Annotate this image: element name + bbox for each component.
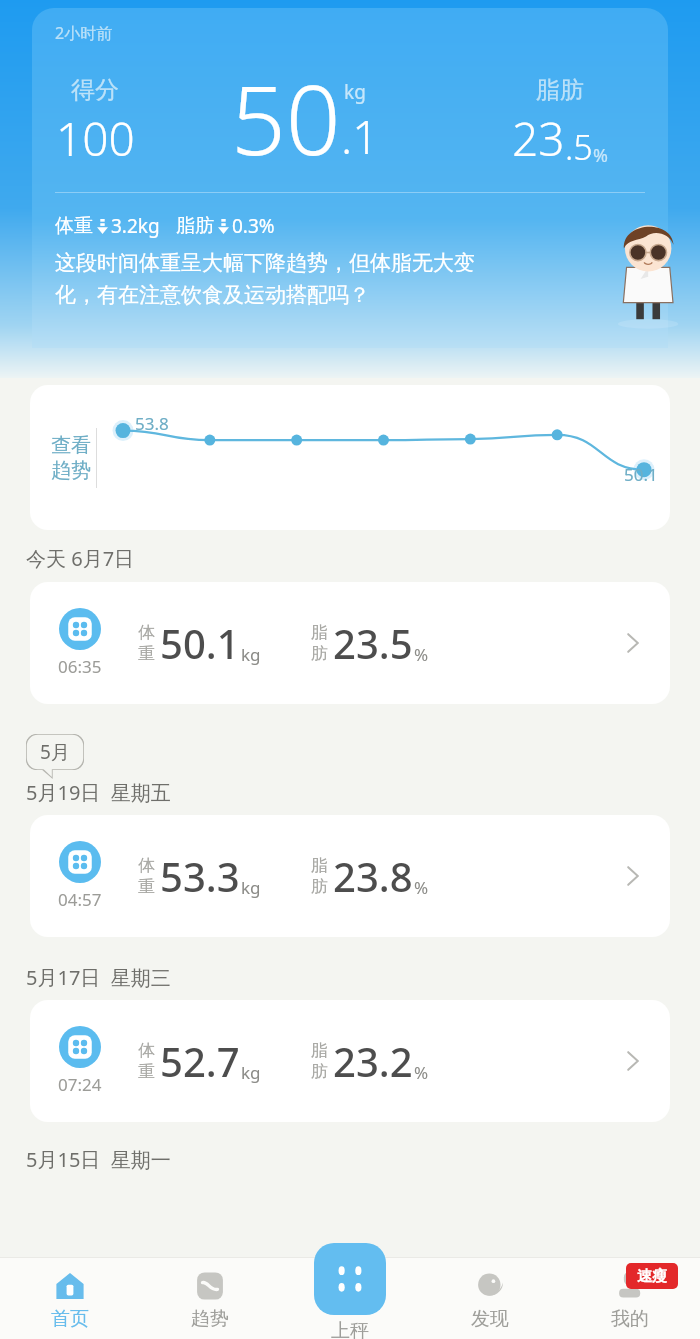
staticText: .5 bbox=[565, 124, 593, 170]
staticText: 5月 bbox=[40, 739, 70, 765]
staticText: 体重 bbox=[55, 214, 93, 238]
staticText: 5月15日 星期一 bbox=[26, 1146, 171, 1173]
staticText: % bbox=[414, 876, 429, 899]
button[interactable]: 发现 bbox=[420, 1257, 560, 1339]
other: 查看详情 bbox=[618, 628, 648, 658]
staticText: 速瘦 bbox=[637, 1267, 667, 1286]
button[interactable]: 首页 bbox=[0, 1257, 140, 1339]
staticText: 上秤 bbox=[331, 1319, 369, 1339]
staticText: kg bbox=[344, 79, 366, 105]
staticText: 23 bbox=[512, 107, 565, 170]
button[interactable]: 06:35 bbox=[30, 582, 670, 704]
staticText: 100 bbox=[56, 107, 135, 170]
button[interactable]: 5月 bbox=[26, 734, 84, 770]
button[interactable]: 趋势 bbox=[140, 1257, 280, 1339]
other: 查看详情 bbox=[618, 1046, 648, 1076]
staticText: 53.3 bbox=[160, 849, 240, 903]
staticText: % bbox=[414, 1061, 429, 1084]
button[interactable]: 查看 bbox=[30, 385, 670, 530]
button[interactable]: 我的 bbox=[560, 1257, 700, 1339]
staticText: 脂肪 bbox=[536, 75, 584, 105]
staticText: kg bbox=[241, 643, 261, 666]
button[interactable]: 上秤 bbox=[314, 1243, 386, 1315]
staticText: .1 bbox=[341, 105, 379, 168]
staticText: 肪 bbox=[311, 643, 328, 664]
staticText: 脂肪 bbox=[176, 214, 214, 238]
staticText: 我的 bbox=[611, 1307, 649, 1331]
staticText: 重 bbox=[138, 1061, 155, 1082]
staticText: 23.2 bbox=[333, 1034, 413, 1088]
staticText: 趋势 bbox=[191, 1307, 229, 1331]
staticText: 3.2kg bbox=[111, 213, 160, 239]
staticText: % bbox=[593, 143, 608, 168]
staticText: 查看 bbox=[51, 433, 91, 458]
staticText: 2小时前 bbox=[55, 22, 113, 44]
other: 查看详情 bbox=[618, 861, 648, 891]
button[interactable]: 07:24 bbox=[30, 1000, 670, 1122]
staticText: 50 bbox=[231, 52, 341, 170]
staticText: 5月17日 星期三 bbox=[26, 964, 171, 991]
staticText: 脂 bbox=[311, 855, 328, 876]
button[interactable]: 04:57 bbox=[30, 815, 670, 937]
staticText: 50.1 bbox=[160, 616, 240, 670]
staticText: 06:35 bbox=[58, 655, 102, 678]
staticText: 体 bbox=[138, 855, 155, 876]
staticText: 肪 bbox=[311, 1061, 328, 1082]
staticText: kg bbox=[241, 1061, 261, 1084]
staticText: 0.3% bbox=[232, 213, 275, 239]
staticText: 23.8 bbox=[333, 849, 413, 903]
staticText: 体 bbox=[138, 1040, 155, 1061]
staticText: 重 bbox=[138, 876, 155, 897]
staticText: kg bbox=[241, 876, 261, 899]
staticText: 重 bbox=[138, 643, 155, 664]
staticText: % bbox=[414, 643, 429, 666]
staticText: 体 bbox=[138, 622, 155, 643]
staticText: 今天 6月7日 bbox=[26, 545, 135, 572]
staticText: 50.1 bbox=[624, 463, 658, 486]
staticText: 趋势 bbox=[51, 458, 91, 483]
staticText: 发现 bbox=[471, 1307, 509, 1331]
staticText: 这段时间体重呈大幅下降趋势，但体脂无大变 化，有在注意饮食及运动搭配吗？ bbox=[55, 250, 475, 308]
staticText: 首页 bbox=[51, 1307, 89, 1331]
staticText: 53.8 bbox=[135, 412, 169, 435]
staticText: 04:57 bbox=[58, 888, 102, 911]
staticText: 得分 bbox=[71, 75, 119, 105]
staticText: 5月19日 星期五 bbox=[26, 779, 171, 806]
staticText: 23.5 bbox=[333, 616, 413, 670]
staticText: 52.7 bbox=[160, 1034, 240, 1088]
staticText: 脂 bbox=[311, 1040, 328, 1061]
staticText: 07:24 bbox=[58, 1073, 102, 1096]
staticText: 脂 bbox=[311, 622, 328, 643]
staticText: 肪 bbox=[311, 876, 328, 897]
